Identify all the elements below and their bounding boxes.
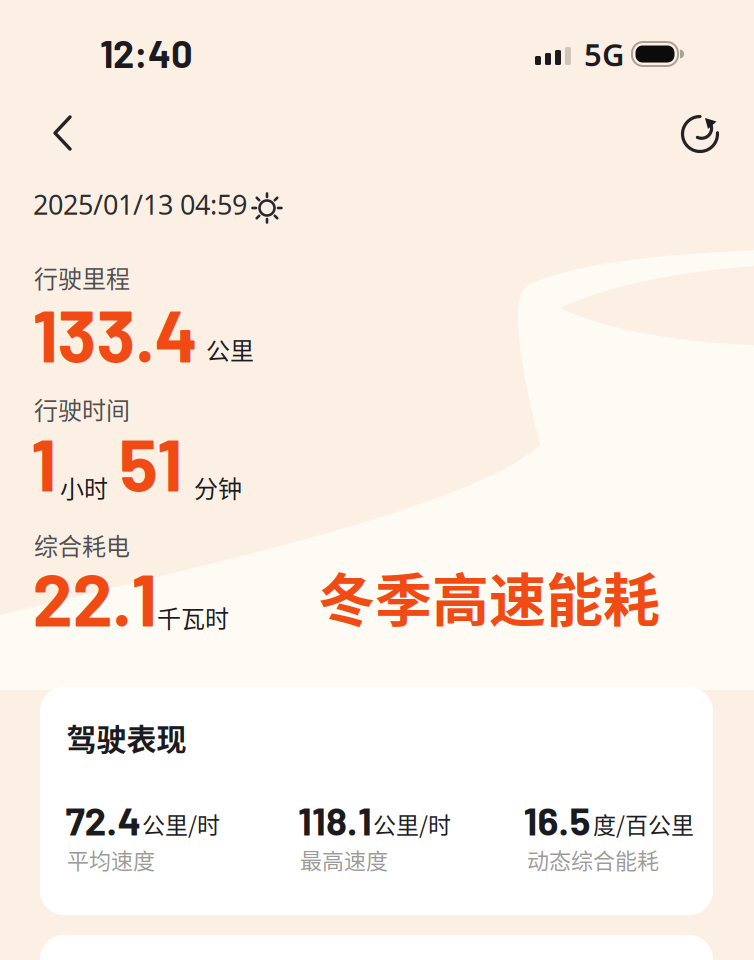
staticText: 公里/时 [142, 807, 220, 840]
staticText: 度/百公里 [593, 807, 694, 840]
staticText: 综合耗电 [34, 527, 130, 562]
staticText: 1 [31, 419, 56, 506]
staticText: 动态综合能耗 [527, 843, 659, 875]
staticText: 16.5 [523, 796, 590, 843]
staticText: 12:40 [100, 30, 193, 76]
staticText: 冬季高速能耗 [318, 555, 660, 637]
staticText: 公里 [206, 332, 254, 367]
staticText: 2025/01/13 04:59 [33, 186, 247, 223]
staticText: 133.4 [32, 290, 198, 377]
staticText: 最高速度 [300, 843, 388, 875]
staticText: 小时 [60, 470, 108, 505]
staticText: 平均速度 [67, 843, 155, 875]
button[interactable]: Back [54, 116, 72, 150]
staticText: 行驶里程 [34, 260, 130, 295]
staticText: 分钟 [194, 470, 242, 505]
staticText: 51 [119, 419, 182, 506]
staticText: 行驶时间 [34, 391, 130, 426]
staticText: 118.1 [298, 796, 372, 843]
staticText: 72.4 [65, 796, 141, 843]
staticText: 千瓦时 [157, 600, 229, 635]
button[interactable]: Refresh [680, 114, 720, 154]
staticText: 5G [584, 33, 625, 75]
staticText: 22.1 [32, 554, 156, 641]
staticText: 驾驶表现 [66, 715, 186, 759]
staticText: 公里/时 [373, 807, 451, 840]
